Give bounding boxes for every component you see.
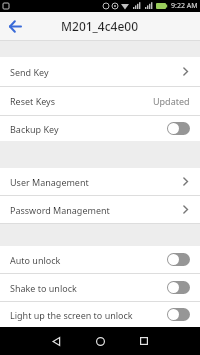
button[interactable]: Send Key <box>0 57 200 86</box>
staticText: 9:22 AM <box>171 1 198 11</box>
staticText: Light up the screen to unlock <box>10 309 133 321</box>
button[interactable]: Shake to unlock <box>0 274 200 301</box>
button[interactable]: Backup Key <box>0 116 200 141</box>
button[interactable]: Light up the screen to unlock <box>0 302 200 327</box>
button[interactable] <box>167 122 190 135</box>
button[interactable] <box>167 281 190 294</box>
staticText: Auto unlock <box>10 254 61 266</box>
button[interactable] <box>122 327 166 355</box>
button[interactable]: User Management <box>0 168 200 195</box>
button[interactable] <box>167 308 190 321</box>
staticText: Password Management <box>10 204 110 216</box>
staticText: Reset Keys <box>10 95 56 107</box>
button[interactable]: Reset Keys <box>0 87 200 115</box>
button[interactable]: Auto unlock <box>0 246 200 273</box>
staticText: Shake to unlock <box>10 282 77 294</box>
button[interactable] <box>167 253 190 266</box>
staticText: User Management <box>10 176 89 188</box>
staticText: M201_4c4e00 <box>61 18 139 34</box>
button[interactable] <box>78 327 122 355</box>
button[interactable]: Password Management <box>0 196 200 223</box>
staticText: Send Key <box>10 66 49 78</box>
staticText: Updated <box>153 95 190 107</box>
button[interactable] <box>6 17 24 35</box>
button[interactable] <box>34 327 78 355</box>
staticText: Backup Key <box>10 123 59 135</box>
